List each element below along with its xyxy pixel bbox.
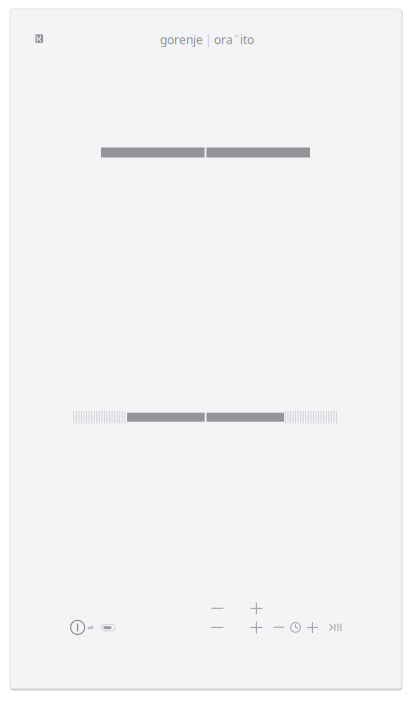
button[interactable]: Timer down bbox=[269, 617, 289, 637]
button[interactable]: Left zone up bbox=[244, 596, 268, 620]
button[interactable]: Heat level bbox=[97, 619, 119, 637]
staticText: gorenje bbox=[160, 31, 203, 47]
button[interactable]: Timer up bbox=[302, 617, 322, 637]
button[interactable]: Right zone down bbox=[205, 617, 229, 637]
staticText: | bbox=[205, 31, 212, 47]
button[interactable]: Right zone up bbox=[244, 615, 268, 639]
button[interactable]: Power boost bbox=[326, 618, 344, 636]
button[interactable]: Left zone down bbox=[205, 598, 229, 618]
staticText: ora¨ito bbox=[214, 31, 254, 47]
button[interactable]: Timer bbox=[286, 618, 304, 636]
button[interactable]: Child lock bbox=[82, 618, 98, 636]
button[interactable]: Power bbox=[63, 612, 93, 642]
